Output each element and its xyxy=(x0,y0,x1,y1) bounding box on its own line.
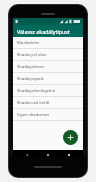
button[interactable]: Recents xyxy=(62,150,76,159)
button[interactable]: Shadoruzit ereltl xyxy=(13,97,83,109)
button[interactable]: Add obstacle xyxy=(63,130,78,145)
button[interactable]: Irgen shadorran xyxy=(13,109,83,121)
staticText: Válassz akadálytípust xyxy=(17,28,70,35)
button[interactable]: Shadoryol olun xyxy=(13,49,83,61)
button[interactable]: Back xyxy=(20,150,34,159)
staticText: Irgen shadorran xyxy=(17,112,50,118)
staticText: Shadoruzit ereltl xyxy=(17,100,50,106)
button[interactable]: Shadoyizhvan xyxy=(13,61,83,73)
staticText: Shadoyizhmikgzhol xyxy=(17,88,56,94)
button[interactable]: Munkahelo xyxy=(13,37,83,49)
button[interactable]: Home xyxy=(41,150,55,159)
staticText: Shadoyizhvan xyxy=(17,64,45,70)
button[interactable]: Shadoyizhmikgzhol xyxy=(13,85,83,97)
button[interactable]: Shadoyisyank xyxy=(13,73,83,85)
staticText: Shadoryol olun xyxy=(17,52,47,58)
staticText: Munkahelo xyxy=(17,40,40,46)
staticText: Shadoyisyank xyxy=(17,76,44,82)
